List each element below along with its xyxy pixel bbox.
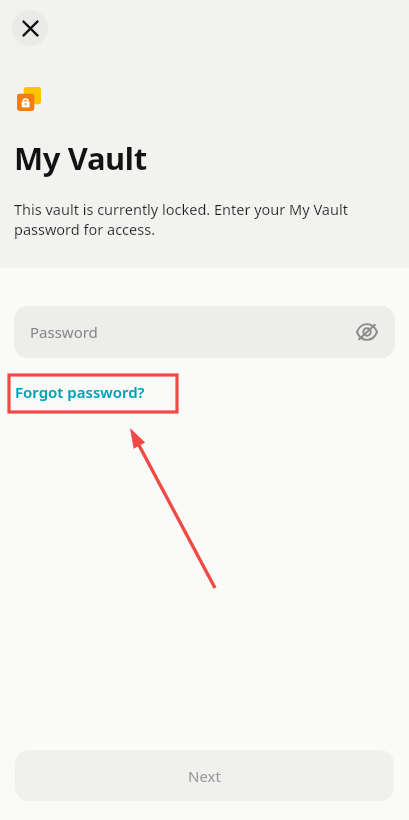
button[interactable]: Close [12, 10, 48, 46]
staticText: Next [188, 766, 221, 786]
button[interactable]: Next [15, 750, 394, 801]
button[interactable]: Forgot password? [14, 380, 146, 404]
staticText: This vault is currently locked. Enter yo… [14, 199, 359, 240]
button[interactable]: Show password [349, 314, 385, 350]
button[interactable]: Password [14, 306, 395, 358]
staticText: Forgot password? [15, 382, 145, 402]
staticText: My Vault [14, 137, 147, 179]
staticText: Password [30, 322, 98, 342]
